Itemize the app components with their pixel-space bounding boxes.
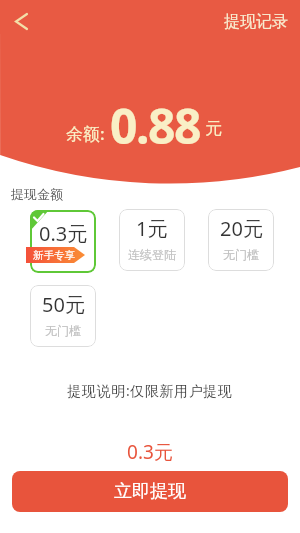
button[interactable]: [6, 6, 36, 36]
button[interactable]: 50元: [30, 285, 96, 347]
staticText: 提现记录: [224, 12, 288, 32]
button[interactable]: 0.3元: [30, 210, 96, 273]
button[interactable]: 20元: [208, 209, 274, 271]
staticText: 立即提现: [114, 480, 186, 503]
staticText: 余额:: [66, 122, 105, 145]
staticText: 0.3元: [0, 439, 300, 465]
button[interactable]: 立即提现: [12, 471, 288, 512]
staticText: 提现金额: [11, 186, 63, 202]
staticText: 0.3元: [39, 220, 88, 247]
staticText: 无门槛: [223, 247, 259, 262]
button[interactable]: 1元: [119, 209, 185, 271]
staticText: 连续登陆: [128, 247, 176, 262]
staticText: 50元: [42, 291, 85, 318]
staticText: 1元: [136, 215, 168, 242]
button[interactable]: 提现记录: [218, 6, 294, 38]
staticText: 无门槛: [45, 323, 81, 338]
staticText: 20元: [220, 215, 263, 242]
staticText: 元: [205, 118, 222, 139]
staticText: 提现说明:仅限新用户提现: [0, 381, 300, 400]
staticText: 新手专享: [33, 249, 75, 262]
staticText: 0.88: [110, 93, 200, 158]
